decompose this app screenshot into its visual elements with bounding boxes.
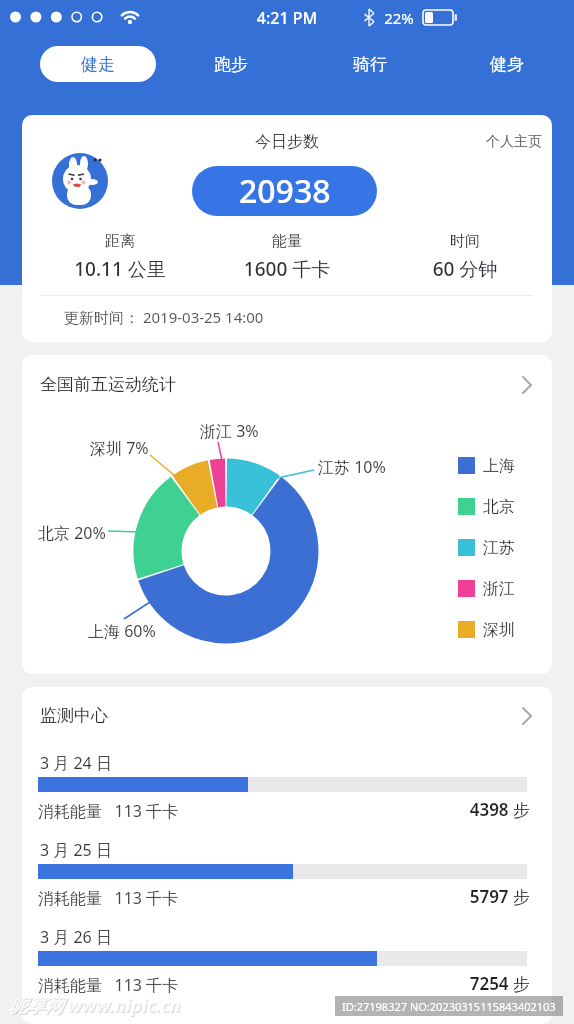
staticText: 江苏 10% <box>318 456 386 478</box>
staticText: 骑行 <box>353 54 387 75</box>
staticText: 4:21 PM <box>247 7 327 29</box>
staticText: 3 月 24 日 <box>40 752 112 774</box>
staticText: 昵享网 www.nipic.cn <box>10 994 182 1019</box>
staticText: 距离 <box>80 232 160 251</box>
button[interactable]: 健身 <box>457 46 557 82</box>
staticText: 浙江 3% <box>200 420 259 442</box>
button[interactable]: 跑步 <box>181 46 281 82</box>
staticText: 3 月 25 日 <box>40 839 112 861</box>
staticText: 4398 步 <box>380 798 530 821</box>
staticText: 北京 20% <box>38 522 106 544</box>
staticText: 20938 <box>239 169 331 213</box>
staticText: 消耗能量 113 千卡 <box>38 974 179 996</box>
staticText: 时间 <box>425 232 505 251</box>
staticText: 消耗能量 113 千卡 <box>38 887 179 909</box>
staticText: ID:27198327 NO:20230315115843402103 <box>342 999 556 1014</box>
button[interactable] <box>22 363 552 405</box>
staticText: 深圳 <box>483 620 515 640</box>
staticText: 江苏 <box>483 538 515 558</box>
staticText: 今日步数 <box>227 132 347 152</box>
button[interactable]: 个人主页 <box>462 128 542 156</box>
button[interactable] <box>22 695 552 737</box>
staticText: 浙江 <box>483 579 515 599</box>
staticText: 北京 <box>483 497 515 517</box>
staticText: 健走 <box>81 54 115 75</box>
staticText: 昵享网 www.nipic.cn <box>9 993 181 1018</box>
staticText: 5797 步 <box>380 885 530 908</box>
staticText: 健身 <box>490 54 524 75</box>
button[interactable]: 20938 <box>192 166 377 216</box>
staticText: 个人主页 <box>486 133 542 151</box>
staticText: 深圳 7% <box>90 437 149 459</box>
staticText: 60 分钟 <box>395 256 535 282</box>
staticText: 上海 <box>483 456 515 476</box>
staticText: 22% <box>381 8 417 28</box>
staticText: 消耗能量 113 千卡 <box>38 800 179 822</box>
staticText: 更新时间： 2019-03-25 14:00 <box>64 307 264 327</box>
staticText: 监测中心 <box>40 705 108 726</box>
staticText: 7254 步 <box>380 972 530 995</box>
staticText: 能量 <box>247 232 327 251</box>
staticText: 1600 千卡 <box>217 256 357 282</box>
staticText: 跑步 <box>214 54 248 75</box>
button[interactable]: 骑行 <box>320 46 420 82</box>
staticText: 3 月 26 日 <box>40 926 112 948</box>
staticText: 10.11 公里 <box>50 256 190 282</box>
button[interactable]: 健走 <box>40 46 156 82</box>
staticText: 上海 60% <box>88 620 156 642</box>
staticText: 全国前五运动统计 <box>40 374 176 395</box>
